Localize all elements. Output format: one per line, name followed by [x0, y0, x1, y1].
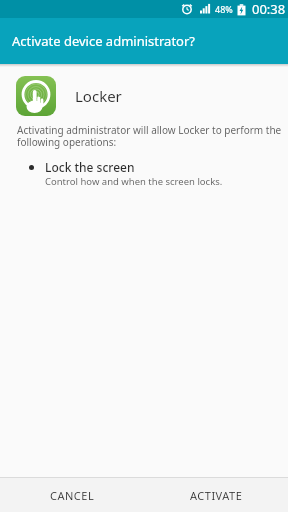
staticText: Control how and when the screen locks. — [45, 175, 223, 188]
button[interactable]: CANCEL — [0, 478, 144, 512]
staticText: Activate device administrator? — [12, 32, 195, 50]
staticText: CANCEL — [50, 488, 95, 503]
staticText: Lock the screen — [45, 159, 135, 175]
staticText: 48% — [215, 3, 233, 15]
staticText: Activating administrator will allow Lock… — [17, 123, 282, 149]
button[interactable]: ACTIVATE — [144, 478, 288, 512]
staticText: Locker — [75, 86, 122, 106]
staticText: 00:38 — [252, 0, 286, 18]
staticText: ACTIVATE — [190, 488, 243, 503]
